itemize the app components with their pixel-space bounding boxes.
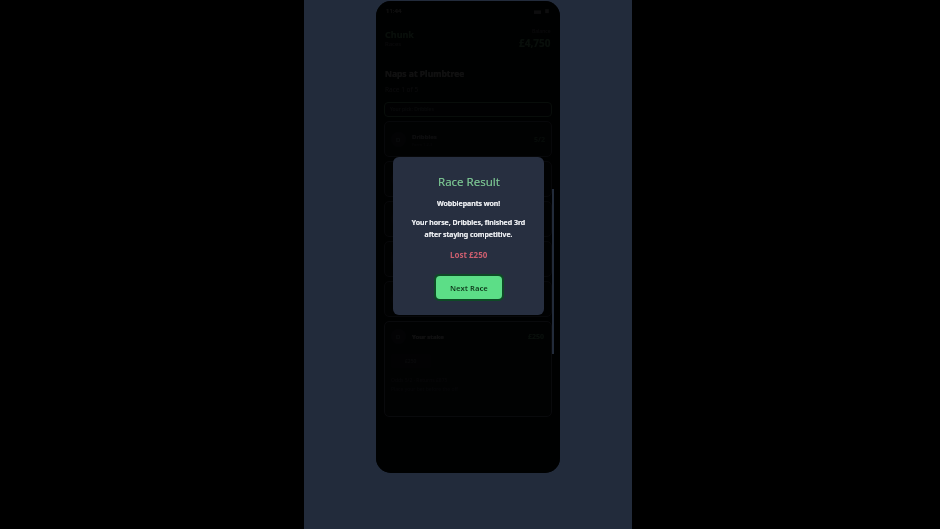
staticText: 9/1 [534, 215, 545, 225]
button[interactable]: T [384, 281, 552, 317]
staticText: Lost £250 [450, 249, 488, 260]
staticText: Your horse, Dribbles, finished 3rd after… [403, 218, 534, 239]
staticText: £4,750 [519, 36, 551, 50]
staticText: Dribbles [412, 133, 437, 141]
staticText: Race Result [438, 174, 500, 190]
staticText: £250 [528, 332, 545, 342]
staticText: 5/2 [534, 135, 545, 145]
other: Battery [544, 8, 550, 14]
staticText: 7/1 [534, 175, 545, 185]
staticText: 11:44 [386, 7, 402, 15]
button[interactable]: Your pick: Dribbles [384, 102, 552, 117]
staticText: Your stake [412, 333, 444, 341]
button[interactable]: O [384, 241, 552, 277]
staticText: Naps at Plumbtree [385, 68, 465, 80]
button[interactable]: S [384, 161, 552, 197]
staticText: Next Race [450, 283, 488, 293]
other: Signal strength [534, 8, 541, 15]
staticText: Chunk [385, 28, 414, 40]
staticText: 12/1 [530, 255, 545, 265]
staticText: Wobblepants won! [437, 199, 501, 209]
button[interactable]: Next Race [434, 274, 504, 301]
staticText: Form 1-2-3 [412, 222, 433, 227]
staticText: Tiny Hooves [412, 293, 449, 301]
button[interactable]: M [384, 201, 552, 237]
staticText: Maple Dash [412, 213, 447, 221]
staticText: 16/1 [530, 295, 545, 305]
